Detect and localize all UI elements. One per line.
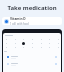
staticText: Take medication bbox=[3, 4, 61, 12]
button[interactable]: Vitamin D bbox=[2, 17, 62, 25]
button[interactable] bbox=[3, 54, 61, 60]
staticText: 1 pill with food bbox=[10, 22, 29, 25]
staticText: Vitamin D bbox=[10, 17, 26, 21]
button[interactable] bbox=[3, 61, 61, 67]
